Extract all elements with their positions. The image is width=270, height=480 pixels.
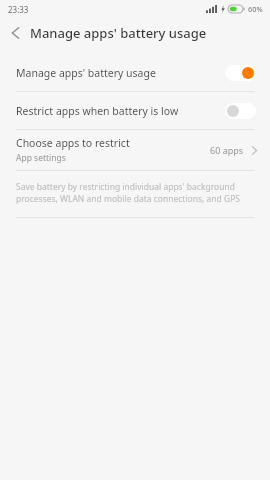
button[interactable]: Restrict apps when battery is low: [0, 92, 270, 129]
staticText: 60%: [248, 4, 263, 14]
button[interactable]: Back: [0, 18, 30, 48]
button[interactable]: Manage apps' battery usage: [0, 54, 270, 91]
staticText: Restrict apps when battery is low: [16, 104, 225, 118]
staticText: Manage apps' battery usage: [16, 66, 225, 80]
staticText: 23:33: [8, 4, 29, 15]
staticText: App settings: [16, 152, 66, 164]
staticText: Choose apps to restrict: [16, 136, 130, 150]
button[interactable]: Choose apps to restrict: [0, 130, 270, 170]
staticText: Save battery by restricting individual a…: [16, 181, 254, 205]
staticText: 60 apps: [210, 144, 244, 156]
staticText: Manage apps' battery usage: [30, 24, 207, 42]
